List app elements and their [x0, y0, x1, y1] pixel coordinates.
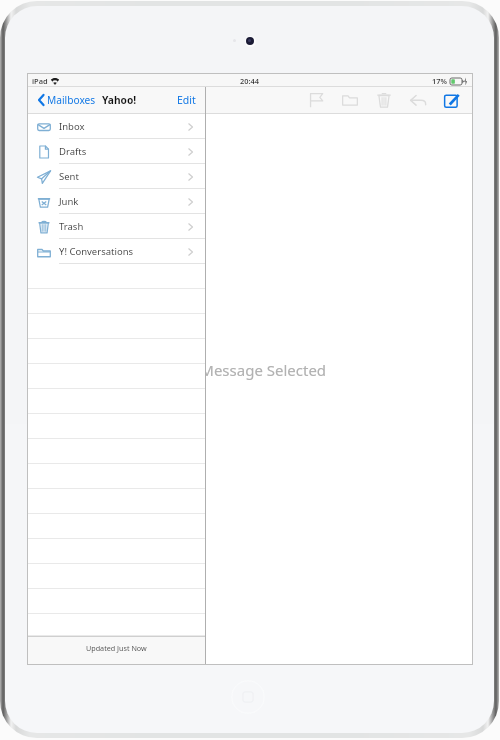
- staticText: Edit: [177, 93, 196, 107]
- staticText: No Message Selected: [29, 360, 473, 380]
- button[interactable]: Delete: [367, 88, 401, 112]
- button[interactable]: Y! Conversations: [28, 239, 205, 264]
- button[interactable]: Reply: [401, 88, 435, 112]
- staticText: Junk: [59, 195, 79, 208]
- button[interactable]: Sent: [28, 164, 205, 189]
- staticText: 17%: [432, 76, 447, 86]
- button[interactable]: Drafts: [28, 139, 205, 164]
- button[interactable]: Edit: [168, 88, 205, 112]
- button[interactable]: Mailboxes: [28, 89, 100, 111]
- staticText: Drafts: [59, 145, 87, 158]
- staticText: Updated Just Now: [86, 643, 147, 653]
- button[interactable]: Move to folder: [333, 88, 367, 112]
- staticText: Yahoo!: [102, 93, 137, 107]
- staticText: Mailboxes: [47, 93, 96, 107]
- staticText: Sent: [59, 170, 79, 183]
- button[interactable]: Compose: [435, 88, 469, 112]
- staticText: iPad: [32, 76, 48, 86]
- staticText: 20:44: [240, 76, 259, 86]
- staticText: Trash: [59, 220, 84, 233]
- button[interactable]: Junk: [28, 189, 205, 214]
- staticText: Y! Conversations: [59, 245, 134, 258]
- staticText: Inbox: [59, 120, 85, 133]
- button[interactable]: Flag: [299, 88, 333, 112]
- button[interactable]: Trash: [28, 214, 205, 239]
- button[interactable]: Inbox: [28, 114, 205, 139]
